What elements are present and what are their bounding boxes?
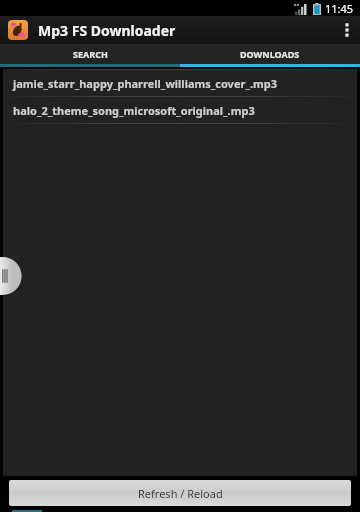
staticText: 11:45 bbox=[325, 1, 354, 16]
button[interactable]: Refresh / Reload bbox=[9, 480, 351, 506]
button[interactable]: DOWNLOADS bbox=[180, 44, 360, 64]
staticText: jamie_starr_happy_pharrell_williams_cove… bbox=[13, 76, 277, 91]
staticText: halo_2_theme_song_microsoft_original_.mp… bbox=[13, 103, 255, 118]
button[interactable]: Open drawer bbox=[0, 257, 13, 295]
staticText: DOWNLOADS bbox=[240, 48, 300, 60]
staticText: Refresh / Reload bbox=[138, 486, 223, 501]
button[interactable]: halo_2_theme_song_microsoft_original_.mp… bbox=[3, 97, 357, 123]
button[interactable]: More options bbox=[334, 16, 360, 44]
button[interactable]: SEARCH bbox=[0, 44, 180, 64]
staticText: SEARCH bbox=[73, 48, 108, 60]
staticText: Mp3 FS Downloader bbox=[38, 21, 176, 40]
button[interactable]: jamie_starr_happy_pharrell_williams_cove… bbox=[3, 70, 357, 96]
